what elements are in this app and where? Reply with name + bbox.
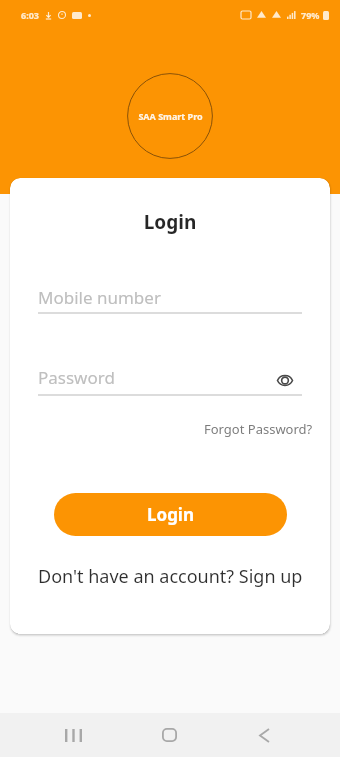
- button[interactable]: Recents: [51, 713, 96, 757]
- staticText: Login: [10, 209, 330, 235]
- staticText: 79%: [301, 9, 320, 21]
- button[interactable]: Forgot Password?: [204, 420, 313, 438]
- button[interactable]: Login: [54, 493, 287, 536]
- button[interactable]: Home: [147, 713, 192, 757]
- staticText: Login: [147, 503, 195, 526]
- button[interactable]: Back: [242, 713, 287, 757]
- button[interactable]: Show password: [276, 371, 294, 389]
- staticText: SAA Smart Pro: [138, 110, 203, 122]
- staticText: Password: [38, 366, 115, 389]
- staticText: Mobile number: [38, 286, 161, 309]
- staticText: 6:03: [21, 9, 39, 21]
- button[interactable]: Don't have an account? Sign up: [38, 564, 303, 589]
